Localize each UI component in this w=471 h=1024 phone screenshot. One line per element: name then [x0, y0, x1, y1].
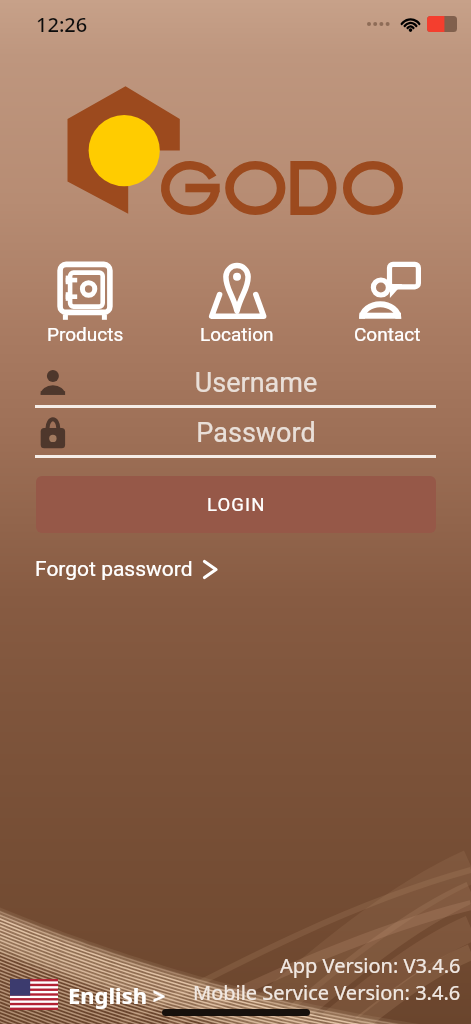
button[interactable]: Forgot password	[27, 549, 228, 590]
button[interactable]: Password	[35, 411, 436, 458]
button[interactable]: English >	[10, 979, 166, 1010]
staticText: Username	[76, 367, 436, 399]
button[interactable]: Products	[27, 253, 143, 349]
staticText: App Version: V3.4.6	[280, 952, 461, 979]
staticText: Mobile Service Version: 3.4.6	[193, 979, 461, 1006]
staticText: Password	[76, 417, 436, 449]
button[interactable]: Contact	[329, 253, 445, 349]
staticText: 12:26	[36, 11, 88, 38]
staticText: LOGIN	[207, 494, 266, 516]
staticText: Contact	[354, 323, 421, 345]
staticText: Products	[47, 323, 124, 345]
staticText: Forgot password	[35, 557, 193, 582]
staticText: English >	[68, 980, 166, 1010]
button[interactable]: LOGIN	[36, 476, 436, 533]
button[interactable]: Location	[179, 253, 295, 349]
button[interactable]: Username	[35, 361, 436, 408]
staticText: Location	[200, 323, 274, 345]
